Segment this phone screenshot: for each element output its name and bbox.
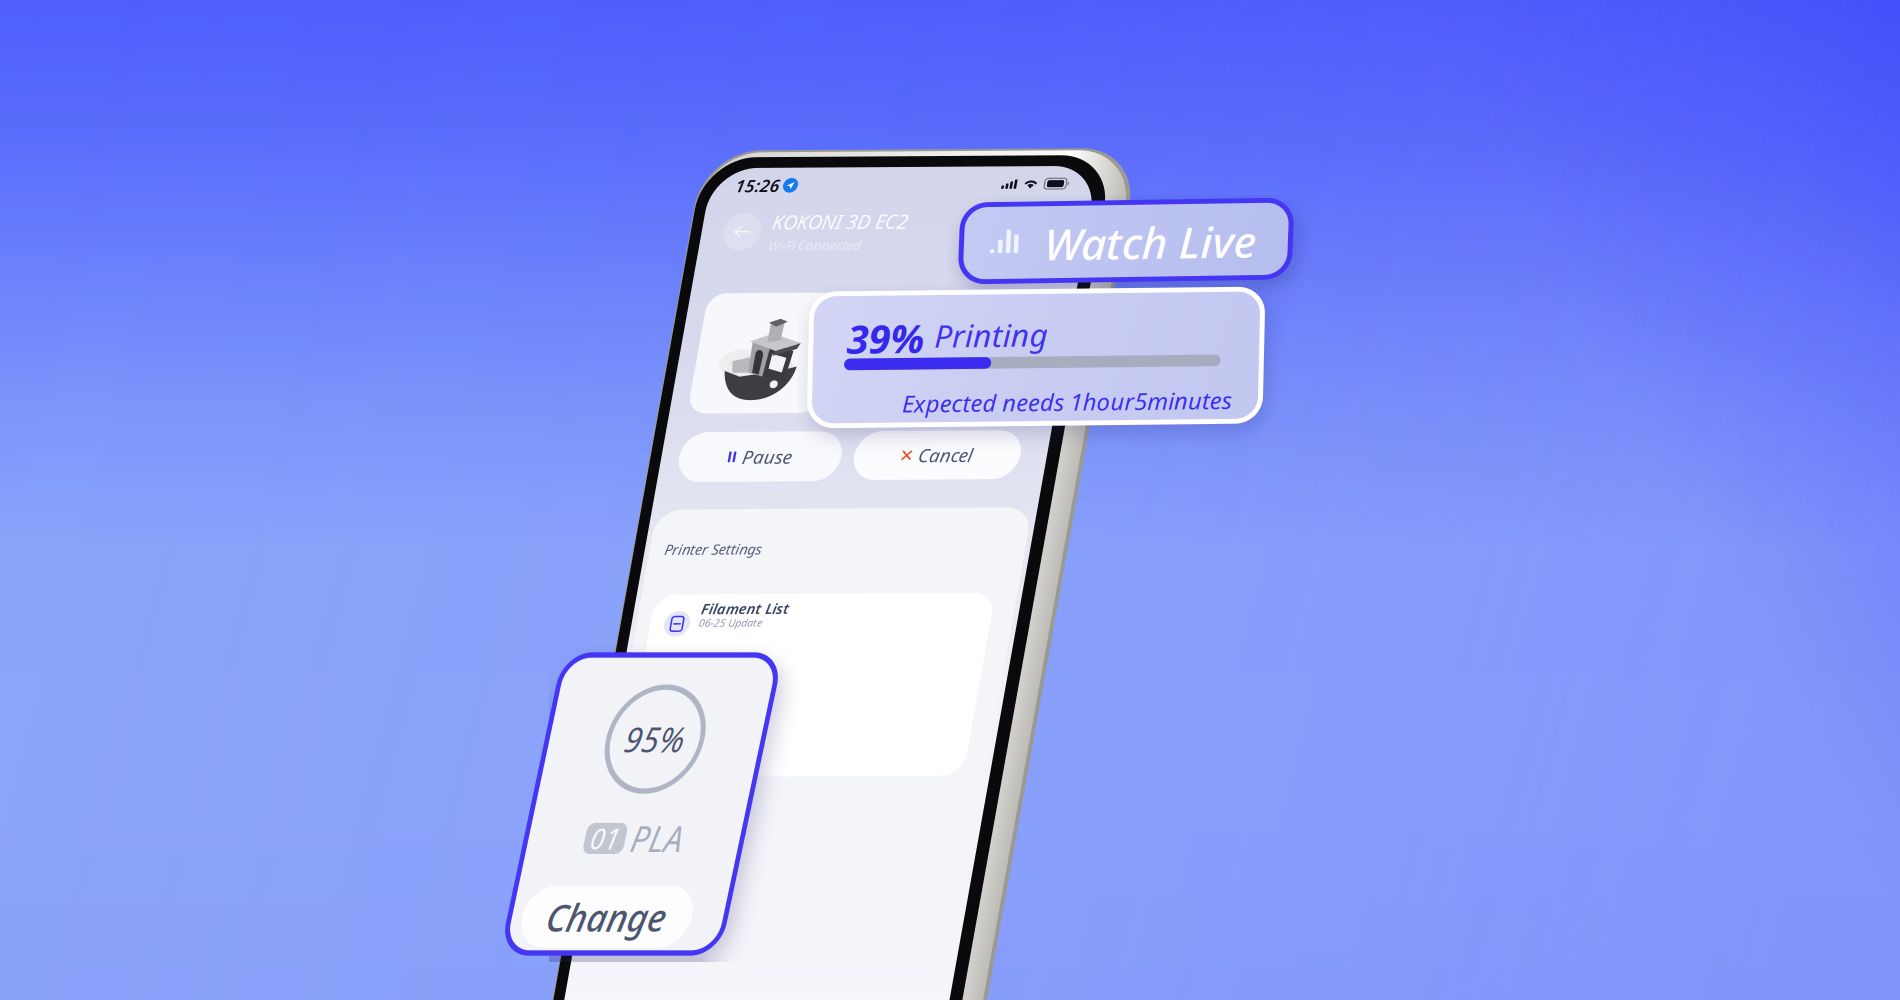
staticText: 15:26 [739, 175, 784, 198]
button[interactable]: Filament List [732, 604, 1076, 791]
staticText: Printing [936, 317, 1051, 359]
staticText: KOKONI 3D EC2 [783, 210, 920, 237]
staticText: Printer Settings [733, 548, 831, 568]
button[interactable]: Back [735, 214, 773, 252]
button[interactable]: Cancel [908, 438, 1076, 488]
button[interactable]: Pause [731, 438, 895, 489]
staticText: Watch Live [1046, 217, 1259, 275]
staticText: Pause [795, 451, 845, 476]
staticText: 39% [848, 314, 926, 367]
staticText: Cancel [973, 451, 1028, 476]
button[interactable]: Change [578, 870, 754, 928]
staticText: Expected needs 1hour5minutes [905, 392, 1237, 424]
staticText: Wi-Fi Connected [783, 239, 877, 256]
staticText: 01 [632, 808, 662, 844]
staticText: 95% [646, 712, 708, 755]
staticText: Change [604, 875, 728, 923]
staticText: Filament List [781, 609, 870, 629]
button[interactable]: Watch Live [963, 205, 1293, 284]
staticText: PLA [674, 804, 728, 848]
